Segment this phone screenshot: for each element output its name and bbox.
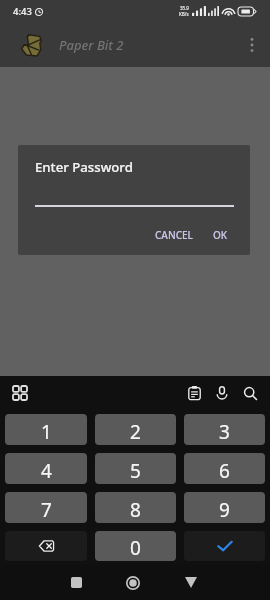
staticText: 3: [219, 419, 230, 445]
staticText: 8: [130, 497, 141, 523]
staticText: 35.9: [180, 5, 189, 11]
staticText: 2: [130, 419, 141, 445]
staticText: 6: [219, 458, 230, 484]
button[interactable]: Clipboard: [180, 379, 208, 407]
button[interactable]: More options: [234, 27, 270, 63]
staticText: 1: [41, 419, 52, 445]
button[interactable]: Backspace: [5, 531, 87, 561]
staticText: 5: [130, 458, 141, 484]
button[interactable]: 9: [184, 492, 265, 523]
button[interactable]: 5: [95, 453, 176, 484]
button[interactable]: CANCEL: [149, 224, 199, 246]
staticText: 4:43: [13, 5, 32, 18]
staticText: 4: [41, 458, 52, 484]
staticText: 9: [219, 497, 230, 523]
button[interactable]: 1: [5, 414, 87, 445]
staticText: 7: [41, 497, 52, 523]
button[interactable]: 4: [5, 453, 87, 484]
button[interactable]: Voice input: [208, 379, 236, 407]
staticText: CANCEL: [155, 228, 193, 242]
button[interactable]: Back: [173, 565, 209, 600]
button[interactable]: Home: [115, 565, 151, 600]
button[interactable]: 8: [95, 492, 176, 523]
button[interactable]: 6: [184, 453, 265, 484]
staticText: Enter Password: [35, 158, 133, 176]
button[interactable]: 0: [95, 531, 176, 561]
button[interactable]: 2: [95, 414, 176, 445]
button[interactable]: 3: [184, 414, 265, 445]
button[interactable]: 7: [5, 492, 87, 523]
button[interactable]: OK: [207, 224, 234, 246]
button[interactable]: Recents: [58, 565, 94, 600]
staticText: 0: [130, 535, 141, 561]
staticText: OK: [213, 228, 228, 242]
staticText: Paper Bit 2: [59, 36, 124, 54]
button[interactable]: Switch keyboard: [6, 379, 34, 407]
button[interactable]: Enter: [184, 531, 265, 561]
staticText: KB/s: [179, 11, 189, 17]
button[interactable]: Search: [236, 379, 264, 407]
